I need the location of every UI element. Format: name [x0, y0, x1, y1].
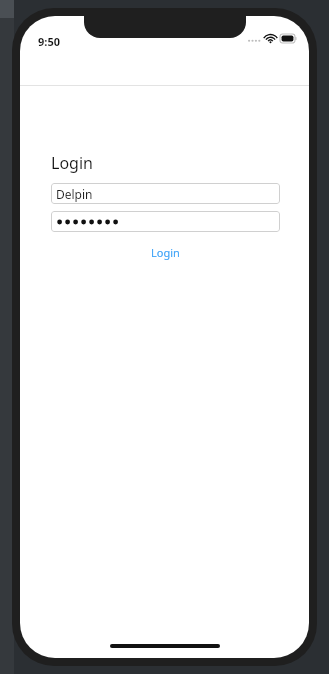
staticText: Delpin [56, 186, 93, 202]
button[interactable]: Delpin [51, 183, 280, 204]
staticText: Login [151, 245, 180, 260]
staticText: 9:50 [38, 34, 60, 49]
button[interactable] [51, 211, 280, 232]
staticText: Login [51, 152, 93, 174]
button[interactable]: Login [51, 245, 280, 260]
